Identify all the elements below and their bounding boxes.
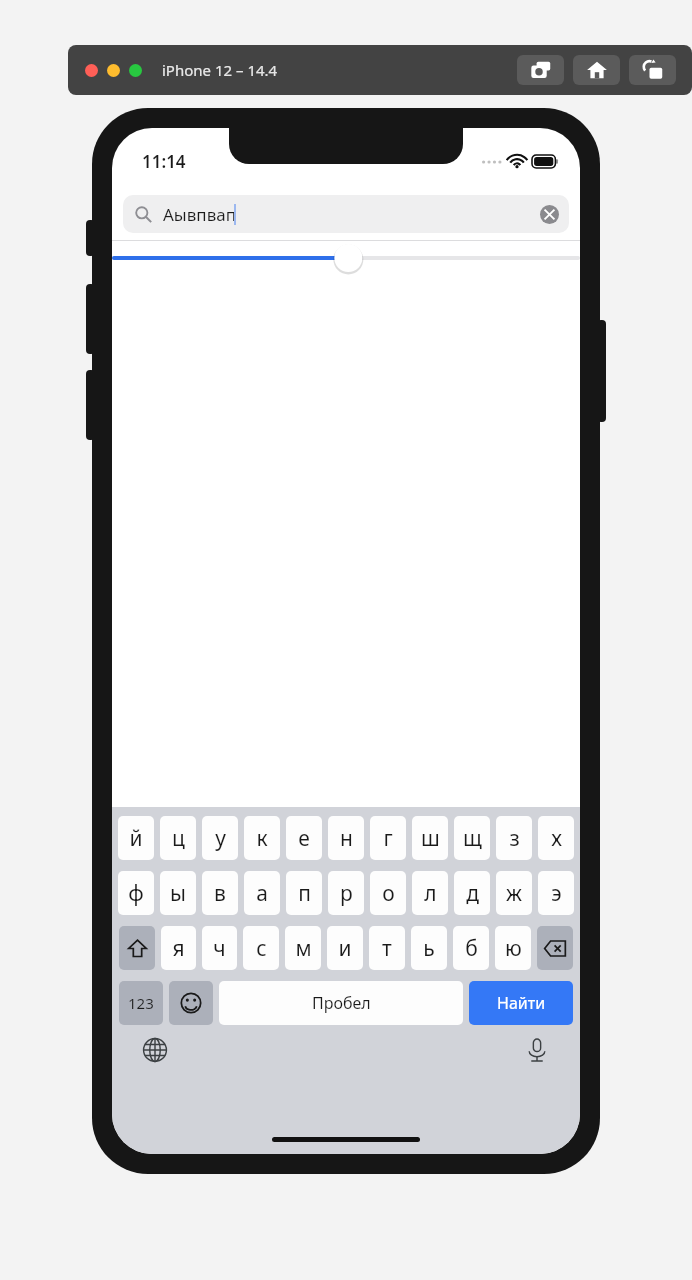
- staticText: к: [256, 824, 268, 853]
- staticText: iPhone 12 – 14.4: [162, 60, 278, 80]
- staticText: Аывпвап: [163, 203, 236, 226]
- staticText: ф: [128, 879, 144, 908]
- staticText: н: [340, 824, 353, 853]
- button[interactable]: ю: [495, 926, 531, 970]
- button[interactable]: к: [244, 816, 280, 860]
- staticText: ч: [213, 934, 226, 963]
- staticText: л: [424, 879, 437, 908]
- staticText: о: [382, 879, 395, 908]
- button[interactable]: ш: [412, 816, 448, 860]
- button[interactable]: Аывпвап: [123, 195, 569, 233]
- button[interactable]: Zoom: [129, 64, 142, 77]
- staticText: Найти: [497, 992, 546, 1014]
- button[interactable]: с: [243, 926, 279, 970]
- staticText: я: [172, 934, 185, 963]
- staticText: ю: [505, 934, 522, 963]
- button[interactable]: Найти: [469, 981, 573, 1025]
- button[interactable]: о: [370, 871, 406, 915]
- button[interactable]: л: [412, 871, 448, 915]
- button[interactable]: ж: [496, 871, 532, 915]
- staticText: 123: [128, 993, 154, 1013]
- button[interactable]: Shift: [119, 926, 155, 970]
- staticText: з: [509, 824, 520, 853]
- button[interactable]: в: [202, 871, 238, 915]
- staticText: и: [338, 934, 352, 963]
- button[interactable]: Clear text: [540, 205, 559, 224]
- staticText: б: [465, 934, 478, 963]
- button[interactable]: Emoji: [169, 981, 213, 1025]
- staticText: п: [298, 879, 311, 908]
- button[interactable]: х: [538, 816, 574, 860]
- button[interactable]: н: [328, 816, 364, 860]
- staticText: в: [214, 879, 226, 908]
- button[interactable]: Rotate: [629, 55, 676, 85]
- staticText: а: [256, 879, 268, 908]
- staticText: э: [551, 879, 562, 908]
- staticText: г: [383, 824, 393, 853]
- staticText: ш: [421, 824, 440, 853]
- button[interactable]: Close: [85, 64, 98, 77]
- button[interactable]: ы: [160, 871, 196, 915]
- staticText: 11:14: [142, 150, 186, 173]
- button[interactable]: Minimize: [107, 64, 120, 77]
- button[interactable]: э: [538, 871, 574, 915]
- button[interactable]: и: [327, 926, 363, 970]
- staticText: ц: [172, 824, 185, 853]
- button[interactable]: 123: [119, 981, 163, 1025]
- button[interactable]: п: [286, 871, 322, 915]
- button[interactable]: р: [328, 871, 364, 915]
- button[interactable]: ь: [411, 926, 447, 970]
- button[interactable]: Пробел: [219, 981, 463, 1025]
- staticText: ь: [423, 934, 435, 963]
- staticText: й: [129, 824, 143, 853]
- staticText: с: [256, 934, 267, 963]
- button[interactable]: й: [118, 816, 154, 860]
- button[interactable]: т: [369, 926, 405, 970]
- staticText: м: [295, 934, 312, 963]
- staticText: е: [298, 824, 310, 853]
- button[interactable]: г: [370, 816, 406, 860]
- button[interactable]: Dictate: [524, 1037, 550, 1063]
- button[interactable]: а: [244, 871, 280, 915]
- button[interactable]: ф: [118, 871, 154, 915]
- button[interactable]: ц: [160, 816, 196, 860]
- staticText: х: [551, 824, 562, 853]
- button[interactable]: Switch keyboard: [142, 1037, 168, 1063]
- button[interactable]: ч: [202, 926, 237, 970]
- staticText: ы: [170, 879, 186, 908]
- button[interactable]: у: [202, 816, 238, 860]
- staticText: у: [215, 824, 226, 853]
- staticText: т: [382, 934, 392, 963]
- staticText: Пробел: [312, 992, 371, 1014]
- button[interactable]: я: [161, 926, 196, 970]
- button[interactable]: з: [496, 816, 532, 860]
- staticText: щ: [463, 824, 482, 853]
- button[interactable]: Home: [573, 55, 620, 85]
- staticText: ж: [506, 879, 522, 908]
- button[interactable]: Screenshot: [517, 55, 564, 85]
- staticText: д: [466, 879, 479, 908]
- button[interactable]: е: [286, 816, 322, 860]
- button[interactable]: Backspace: [537, 926, 573, 970]
- button[interactable]: д: [454, 871, 490, 915]
- staticText: р: [340, 879, 353, 908]
- button[interactable]: б: [453, 926, 489, 970]
- button[interactable]: м: [285, 926, 321, 970]
- button[interactable]: щ: [454, 816, 490, 860]
